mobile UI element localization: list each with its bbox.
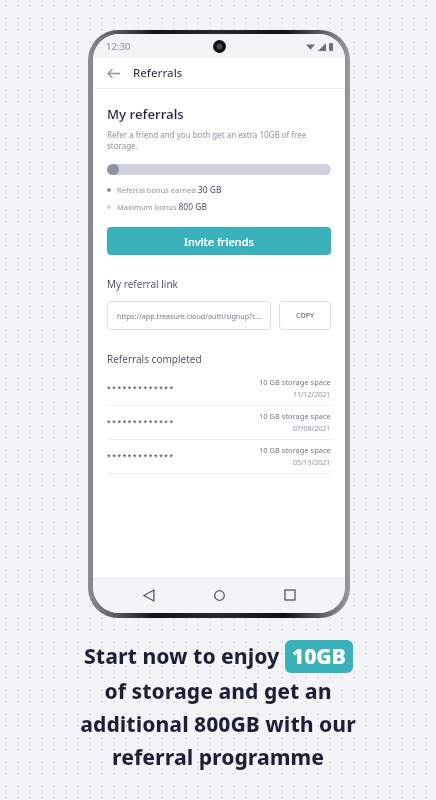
staticText: My referral link [107, 277, 178, 291]
button[interactable]: Invite friends [107, 227, 331, 255]
staticText: Maximum bonus 800 GB [117, 201, 208, 213]
staticText: My referrals [107, 105, 184, 123]
staticText: COPY [296, 311, 315, 321]
staticText: Referral bonus earned 30 GB [117, 184, 222, 196]
staticText: 10 GB storage space [259, 377, 331, 387]
staticText: * * * * * * * * * * * * * [107, 452, 174, 461]
staticText: Invite friends [184, 234, 254, 249]
staticText: referral programme [112, 743, 324, 772]
button[interactable]: Home [204, 580, 234, 610]
staticText: 10GB [292, 642, 346, 671]
staticText: Referrals [133, 65, 183, 81]
button[interactable]: * * * * * * * * * * * * * [107, 372, 331, 406]
staticText: 05/19/2021 [293, 458, 331, 468]
staticText: https://app.treasure.cloud/auth/signup?c… [117, 311, 262, 321]
staticText: 07/08/2021 [293, 424, 331, 434]
staticText: Refer a friend and you both get an extra… [107, 129, 331, 151]
button[interactable]: * * * * * * * * * * * * * [107, 406, 331, 440]
button[interactable]: COPY [279, 301, 331, 330]
button[interactable]: Back [134, 580, 164, 610]
staticText: 10 GB storage space [259, 445, 331, 455]
button[interactable]: Recent apps [275, 580, 305, 610]
button[interactable]: Back [101, 61, 125, 85]
button[interactable]: * * * * * * * * * * * * * [107, 440, 331, 474]
staticText: 10 GB storage space [259, 411, 331, 421]
staticText: Start now to enjoy [84, 642, 285, 671]
staticText: Referrals completed [107, 352, 202, 366]
staticText: additional 800GB with our [80, 710, 356, 739]
staticText: * * * * * * * * * * * * * [107, 384, 174, 393]
staticText: of storage and get an [104, 677, 332, 706]
staticText: * * * * * * * * * * * * * [107, 418, 174, 427]
staticText: 11/12/2021 [293, 390, 331, 400]
button[interactable]: https://app.treasure.cloud/auth/signup?c… [107, 301, 271, 330]
staticText: 12:30 [106, 40, 131, 53]
